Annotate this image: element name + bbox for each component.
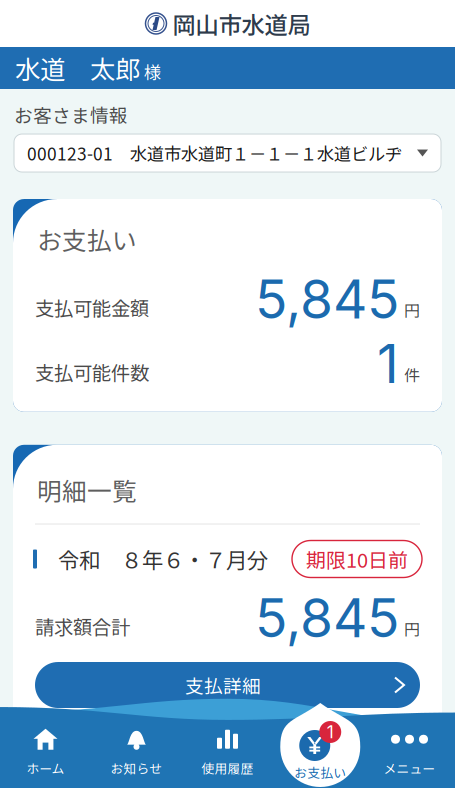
- staticText: 水道 太郎: [15, 50, 140, 86]
- staticText: 使用履歴: [201, 759, 253, 777]
- button[interactable]: メニュー: [364, 718, 455, 788]
- staticText: 支払可能件数: [35, 358, 149, 386]
- staticText: お支払い: [37, 221, 137, 257]
- staticText: 5,845: [255, 585, 399, 650]
- staticText: 1: [377, 331, 399, 396]
- staticText: 5,845: [255, 267, 399, 331]
- button[interactable]: ホーム: [0, 718, 91, 788]
- staticText: 円: [404, 298, 420, 321]
- button[interactable]: 000123-01 水道市水道町１－１－１水道ビルヂ: [14, 134, 441, 172]
- staticText: 件: [404, 363, 420, 386]
- staticText: 支払詳細: [185, 671, 261, 698]
- button[interactable]: お知らせ: [91, 718, 182, 788]
- staticText: 円: [404, 617, 420, 640]
- staticText: 様: [140, 59, 161, 84]
- staticText: 000123-01 水道市水道町１－１－１水道ビルヂ: [27, 140, 402, 166]
- staticText: ホーム: [26, 759, 64, 777]
- button[interactable]: 1: [278, 703, 362, 787]
- staticText: 期限10日前: [306, 544, 408, 573]
- staticText: 明細一覧: [37, 472, 137, 507]
- button[interactable]: 使用履歴: [182, 718, 273, 788]
- staticText: 1: [327, 721, 334, 742]
- button[interactable]: 支払詳細: [35, 662, 420, 708]
- staticText: 請求額合計: [35, 612, 130, 640]
- staticText: お客さま情報: [14, 101, 128, 128]
- staticText: 岡山市水道局: [172, 7, 310, 40]
- staticText: お知らせ: [110, 759, 162, 777]
- staticText: お支払い: [294, 763, 346, 781]
- staticText: 令和 ８年６・７月分: [37, 544, 268, 574]
- staticText: メニュー: [383, 759, 435, 777]
- staticText: 支払可能金額: [35, 293, 149, 321]
